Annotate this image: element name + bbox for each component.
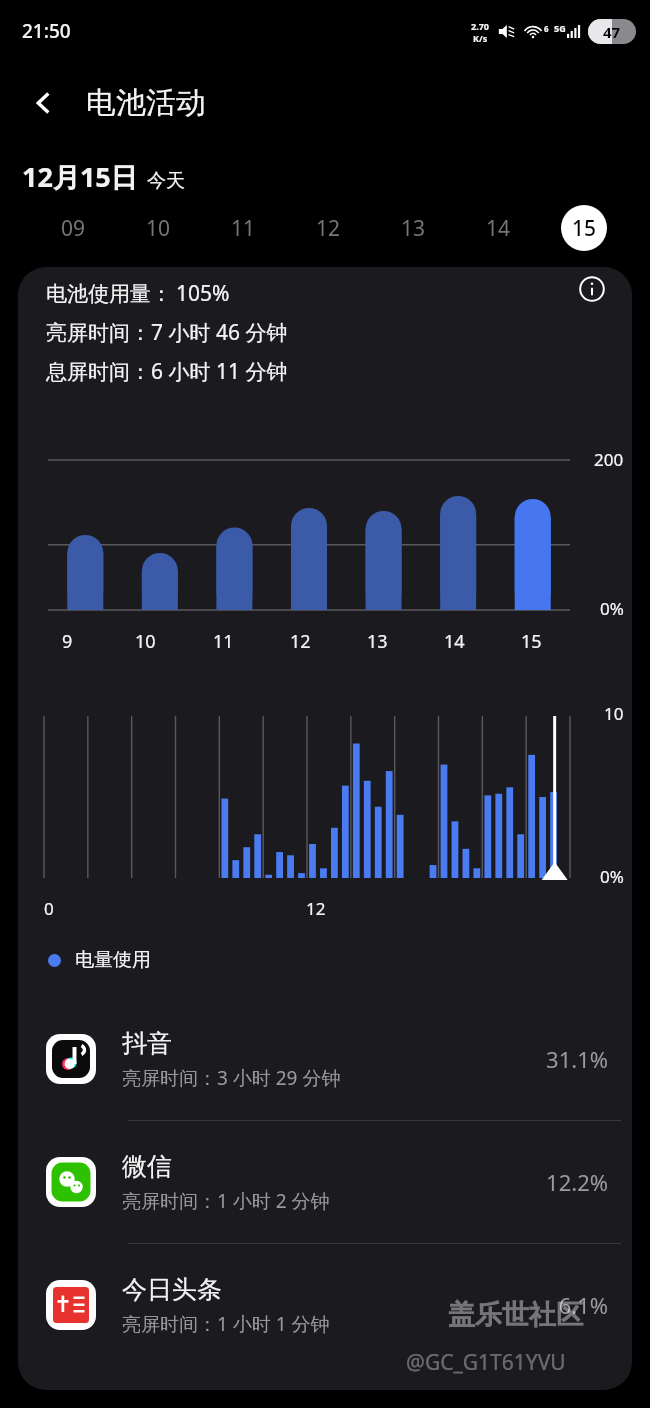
staticText: 15	[521, 629, 542, 654]
staticText: 105%	[176, 279, 230, 308]
staticText: 13	[367, 629, 388, 654]
staticText: 电量使用	[75, 948, 151, 972]
staticText: 盖乐世社区	[448, 1298, 583, 1332]
staticText: 10	[604, 702, 624, 725]
staticText: 12月15日	[22, 158, 138, 195]
staticText: 12	[306, 897, 326, 920]
staticText: 息屏时间：6 小时 11 分钟	[46, 357, 288, 386]
staticText: 10	[146, 214, 171, 243]
staticText: 11	[231, 214, 256, 243]
staticText: 6.1%	[558, 1290, 608, 1320]
staticText: 亮屏时间：7 小时 46 分钟	[46, 318, 288, 347]
button[interactable]: 14	[456, 198, 541, 258]
staticText: 15	[572, 214, 597, 243]
button[interactable]: Info	[572, 269, 612, 309]
button[interactable]: 15	[541, 198, 626, 258]
staticText: 13	[401, 214, 426, 243]
button[interactable]: 微信	[18, 1121, 632, 1243]
staticText: 2.70	[471, 20, 489, 32]
staticText: 21:50	[22, 18, 71, 44]
staticText: 31.1%	[546, 1044, 608, 1074]
staticText: 12	[290, 629, 311, 654]
staticText: 微信	[122, 1151, 172, 1182]
staticText: 0%	[600, 865, 624, 888]
staticText: 电池使用量：	[46, 281, 172, 307]
staticText: 11	[213, 629, 234, 654]
button[interactable]: 10	[116, 198, 201, 258]
staticText: 10	[135, 629, 156, 654]
button[interactable]: 09	[30, 198, 116, 258]
staticText: 0	[44, 897, 54, 920]
staticText: 6	[544, 23, 549, 34]
button[interactable]: Back	[18, 77, 70, 129]
button[interactable]: 抖音	[18, 998, 632, 1120]
staticText: 200	[594, 448, 624, 471]
staticText: 9	[62, 629, 73, 654]
staticText: 亮屏时间：1 小时 2 分钟	[122, 1188, 330, 1214]
staticText: 电池活动	[86, 84, 206, 122]
staticText: 亮屏时间：1 小时 1 分钟	[122, 1311, 330, 1337]
button[interactable]: 13	[371, 198, 456, 258]
staticText: K/s	[473, 32, 488, 44]
staticText: @GC_G1T61YVU	[406, 1348, 566, 1377]
button[interactable]: 今日头条	[18, 1244, 632, 1366]
staticText: 12	[316, 214, 341, 243]
staticText: 今日头条	[122, 1274, 222, 1305]
staticText: 5G	[554, 22, 566, 34]
staticText: 14	[444, 629, 465, 654]
staticText: 47	[603, 22, 621, 42]
staticText: 14	[486, 214, 511, 243]
staticText: 12.2%	[546, 1167, 608, 1197]
staticText: 抖音	[122, 1028, 172, 1059]
staticText: 亮屏时间：3 小时 29 分钟	[122, 1065, 341, 1091]
staticText: 0%	[600, 597, 624, 620]
button[interactable]: 11	[201, 198, 286, 258]
staticText: 09	[61, 214, 86, 243]
button[interactable]: 12	[286, 198, 371, 258]
staticText: 今天	[147, 169, 185, 193]
